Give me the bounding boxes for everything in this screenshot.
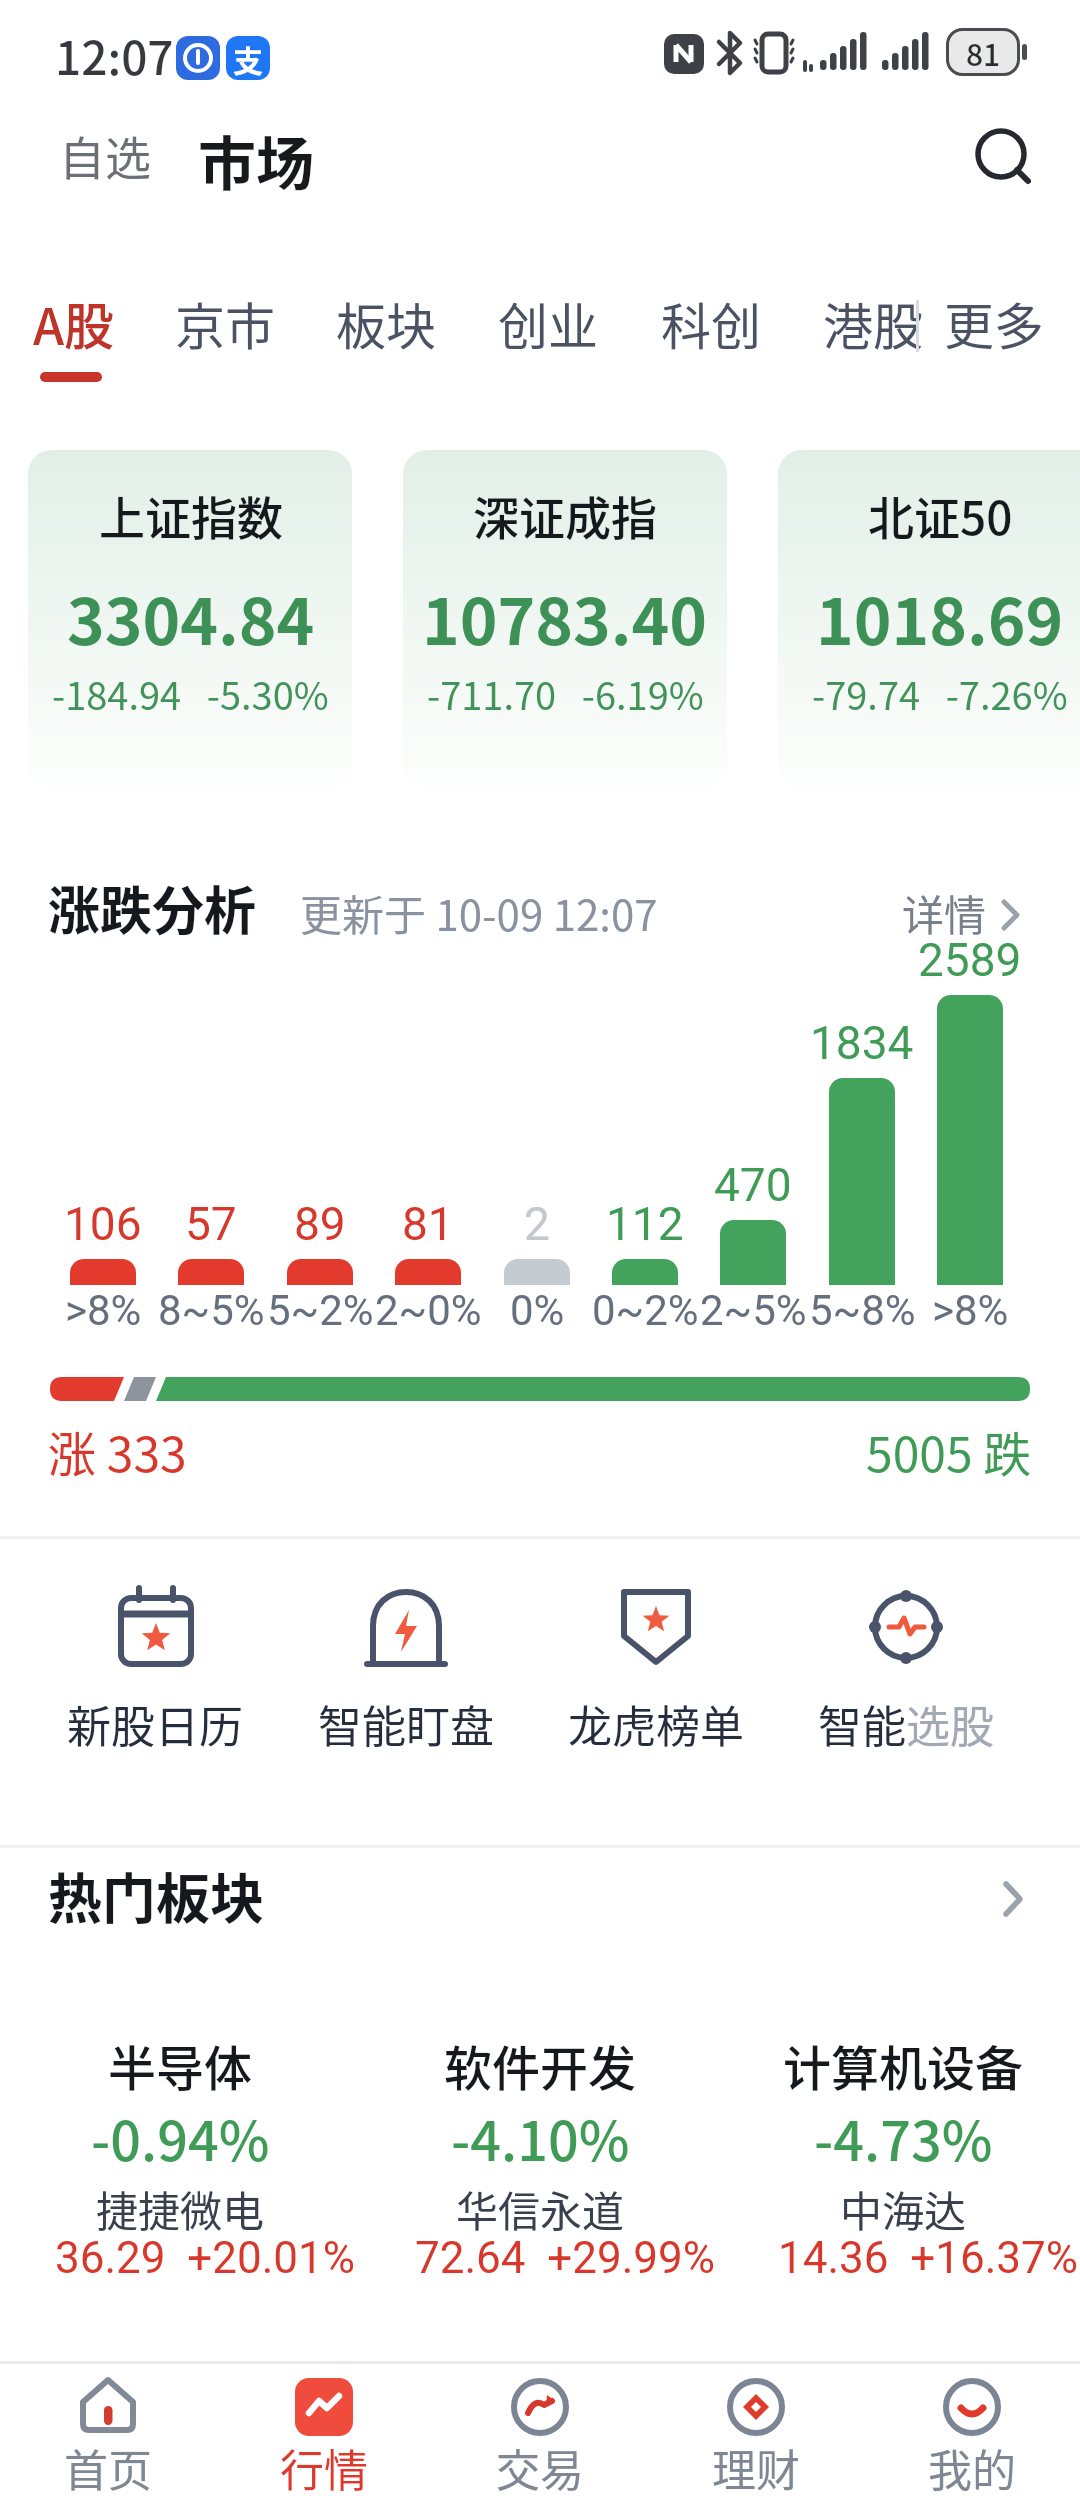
staticText: 龙虎榜单 — [568, 1692, 744, 1756]
button[interactable]: 北证50 — [778, 450, 1080, 788]
staticText: 智能盯盘 — [318, 1692, 494, 1756]
button[interactable] — [370, 2010, 710, 2310]
staticText: -711.70 -6.19% — [427, 666, 704, 721]
staticText: 5~2% — [267, 1286, 374, 1335]
staticText: 首页 — [64, 2436, 152, 2500]
staticText: 软件开发 — [444, 2030, 637, 2100]
staticText: 2~5% — [700, 1286, 807, 1335]
button[interactable]: 港股 — [813, 280, 913, 370]
staticText: 热门板块 — [48, 1856, 264, 1934]
staticText: 行情 — [280, 2436, 368, 2500]
staticText: 详情 — [902, 882, 987, 943]
staticText: 0% — [510, 1286, 565, 1335]
staticText: 3304.84 — [67, 571, 315, 664]
button[interactable] — [432, 2364, 648, 2504]
staticText: 理财 — [712, 2436, 800, 2500]
staticText: 89 — [294, 1197, 346, 1251]
staticText: 112 — [606, 1197, 684, 1251]
staticText: 1018.69 — [816, 571, 1064, 664]
button[interactable] — [960, 1856, 1060, 1936]
staticText: -4.73% — [814, 2098, 993, 2176]
staticText: 自选 — [59, 122, 151, 189]
staticText: 5005 跌 — [866, 1416, 1032, 1486]
staticText: 京市 — [175, 287, 275, 359]
staticText: 1834 — [810, 1016, 914, 1070]
staticText: 新股日历 — [67, 1692, 243, 1756]
button[interactable]: 板块 — [326, 280, 426, 370]
button[interactable]: 创业 — [488, 280, 588, 370]
staticText: 半导体 — [108, 2030, 253, 2100]
staticText: A股 — [33, 287, 115, 359]
staticText: 上证指数 — [99, 482, 283, 549]
staticText: 中海达 — [840, 2178, 967, 2239]
staticText: 选股 — [906, 1692, 994, 1756]
staticText: 计算机设备 — [783, 2030, 1024, 2100]
button[interactable]: 科创 — [651, 280, 751, 370]
button[interactable] — [35, 1560, 275, 1790]
staticText: 10783.40 — [422, 571, 708, 664]
button[interactable] — [733, 2010, 1073, 2310]
staticText: 5~8% — [809, 1286, 916, 1335]
staticText: -184.94 -5.30% — [52, 666, 329, 721]
button[interactable]: 深证成指 — [403, 450, 727, 788]
staticText: 创业 — [498, 287, 598, 359]
button[interactable] — [536, 1560, 776, 1790]
staticText: 更新于 10-09 12:07 — [300, 882, 658, 943]
staticText: 8~5% — [158, 1286, 265, 1335]
button[interactable]: 自选 — [40, 120, 170, 190]
staticText: 港股 — [823, 287, 923, 359]
staticText: 北证50 — [868, 482, 1013, 549]
button[interactable] — [960, 120, 1050, 200]
staticText: 市场 — [198, 118, 315, 202]
staticText: 12:07 — [55, 22, 174, 89]
staticText: 华信永道 — [456, 2178, 625, 2239]
staticText: 2~0% — [375, 1286, 482, 1335]
staticText: 捷捷微电 — [96, 2178, 265, 2239]
staticText: 板块 — [336, 287, 436, 359]
staticText: -4.10% — [451, 2098, 630, 2176]
staticText: -79.74 -7.26% — [812, 666, 1068, 721]
button[interactable] — [864, 2364, 1080, 2504]
button[interactable]: 京市 — [165, 280, 265, 370]
staticText: >8% — [65, 1286, 142, 1335]
staticText: 我的 — [928, 2436, 1016, 2500]
staticText: 81 — [966, 31, 1001, 74]
staticText: -0.94% — [91, 2098, 270, 2176]
staticText: 涨 333 — [48, 1416, 187, 1486]
staticText: 更多 — [944, 287, 1044, 359]
staticText: 2589 — [918, 933, 1022, 987]
button[interactable]: 上证指数 — [28, 450, 352, 788]
staticText: 36.29 +20.01% — [55, 2232, 356, 2284]
staticText: 72.64 +29.99% — [415, 2232, 716, 2284]
button[interactable] — [0, 2364, 216, 2504]
staticText: 0~2% — [592, 1286, 699, 1335]
staticText: 57 — [185, 1197, 237, 1251]
staticText: 2 — [524, 1197, 550, 1251]
staticText: 14.36 +16.37% — [778, 2232, 1079, 2284]
staticText: 470 — [714, 1158, 792, 1212]
button[interactable]: 更多 — [934, 280, 1034, 370]
button[interactable] — [286, 1560, 526, 1790]
staticText: >8% — [932, 1286, 1009, 1335]
staticText: 涨跌分析 — [48, 870, 257, 945]
button[interactable] — [10, 2010, 350, 2310]
staticText: 81 — [402, 1197, 454, 1251]
staticText: 交易 — [496, 2436, 584, 2500]
staticText: 深证成指 — [473, 482, 657, 549]
staticText: 106 — [64, 1197, 142, 1251]
button[interactable] — [216, 2364, 432, 2504]
staticText: 科创 — [661, 287, 761, 359]
button[interactable] — [648, 2364, 864, 2504]
button[interactable] — [786, 1560, 1026, 1790]
button[interactable]: A股 — [23, 280, 105, 370]
staticText: 支 — [233, 37, 263, 80]
button[interactable]: 详情 — [890, 870, 1040, 940]
staticText: 智能 — [818, 1692, 906, 1756]
